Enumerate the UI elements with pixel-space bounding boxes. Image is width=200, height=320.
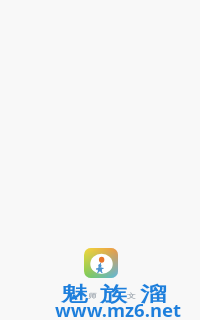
staticText: 师 xyxy=(88,291,97,299)
button[interactable]: App icon xyxy=(84,248,118,278)
staticText: 溜 xyxy=(140,282,167,307)
staticText: 文 xyxy=(127,291,136,299)
staticText: 族 xyxy=(100,282,127,307)
staticText: 魅 xyxy=(61,282,88,307)
staticText: www.mz6.net xyxy=(55,297,182,320)
